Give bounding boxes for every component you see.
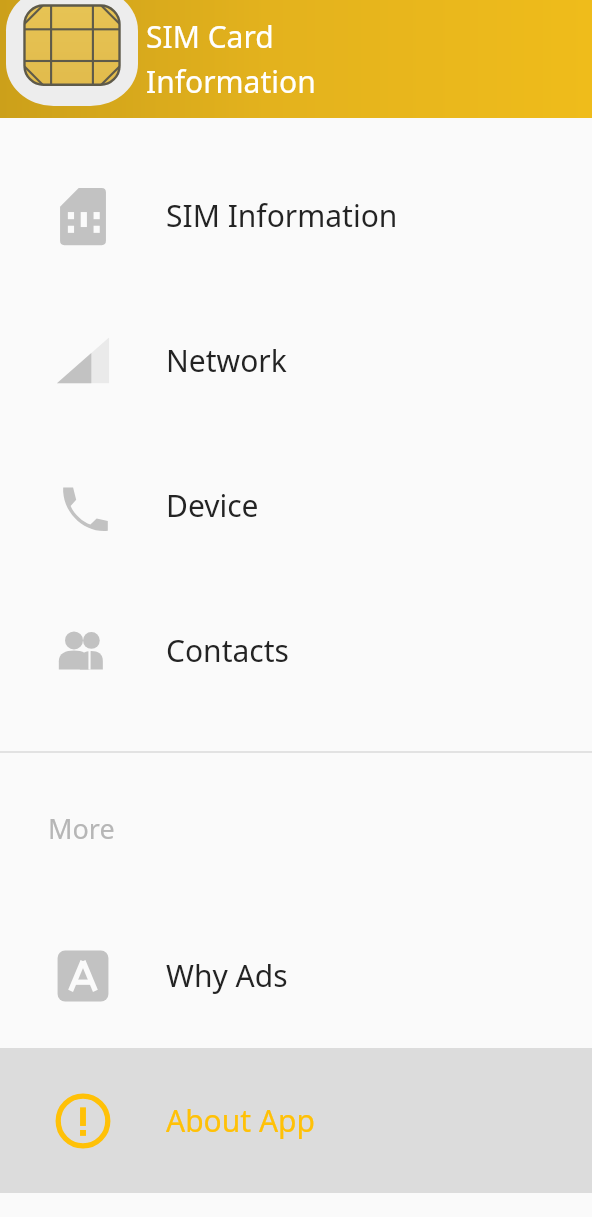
- button[interactable]: Why Ads: [0, 903, 592, 1048]
- button[interactable]: About App: [0, 1048, 592, 1193]
- staticText: About App: [166, 1100, 316, 1141]
- button[interactable]: Contacts: [0, 578, 592, 723]
- staticText: Device: [166, 485, 259, 526]
- staticText: Network: [166, 340, 287, 381]
- staticText: Why Ads: [166, 955, 288, 996]
- staticText: Information: [146, 61, 316, 102]
- staticText: SIM Information: [166, 195, 398, 236]
- staticText: SIM Card: [146, 16, 274, 57]
- button[interactable]: SIM Information: [0, 143, 592, 288]
- button[interactable]: Device: [0, 433, 592, 578]
- button[interactable]: Network: [0, 288, 592, 433]
- staticText: Contacts: [166, 630, 289, 671]
- staticText: More: [48, 810, 115, 847]
